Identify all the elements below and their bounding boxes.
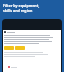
button[interactable]: Filter chip bbox=[15, 46, 25, 50]
button[interactable]: Menu bbox=[4, 31, 6, 33]
staticText: Filter by equipment, bbox=[3, 3, 40, 8]
button[interactable]: Filter chip bbox=[4, 46, 14, 50]
staticText: skills and region bbox=[3, 8, 33, 13]
